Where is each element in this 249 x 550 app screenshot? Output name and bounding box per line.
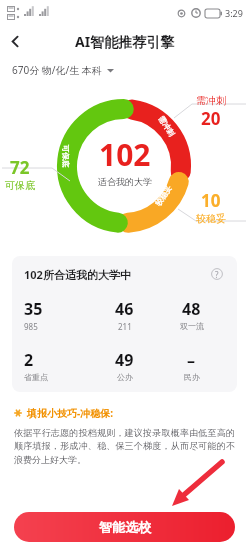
staticText: 72 — [10, 156, 30, 179]
staticText: 102 — [99, 134, 151, 175]
staticText: 2 — [24, 349, 34, 371]
staticText: 民办 — [184, 372, 200, 382]
staticText: 适合我的大学 — [98, 176, 152, 187]
staticText: 智能选校 — [99, 519, 151, 535]
staticText: 35 — [24, 298, 43, 320]
staticText: 公办 — [117, 372, 133, 382]
staticText: 3:29 — [225, 7, 243, 19]
staticText: 可保底 — [5, 179, 35, 192]
button[interactable]: Help — [209, 266, 225, 282]
staticText: 需冲刺 — [156, 114, 177, 139]
staticText: 49 — [115, 349, 134, 371]
staticText: 211 — [118, 321, 132, 332]
staticText: 48 — [182, 298, 201, 320]
staticText: 20 — [201, 107, 221, 130]
staticText: 较稳妥 — [196, 212, 226, 225]
staticText: 可保底 — [61, 145, 70, 168]
staticText: 较稳妥 — [153, 183, 174, 208]
staticText: 省重点 — [24, 372, 48, 382]
staticText: AI智能推荐引擎 — [75, 32, 175, 51]
staticText: ? — [215, 269, 219, 280]
button[interactable]: 智能选校 — [14, 512, 235, 542]
staticText: 双一流 — [180, 321, 204, 331]
staticText: 10 — [201, 189, 221, 212]
staticText: 填报小技巧-冲稳保: — [27, 406, 114, 420]
staticText: 670分 物/化/生 本科 — [12, 63, 102, 77]
button[interactable]: Back — [0, 26, 30, 56]
staticText: 依据平行志愿的投档规则，建议按录取概率由低至高的顺序填报，形成冲、稳、保三个梯度… — [14, 427, 235, 466]
button[interactable]: 670分 物/化/生 本科 — [12, 56, 249, 84]
staticText: – — [187, 349, 196, 371]
staticText: 102所合适我的大学中 — [24, 267, 131, 282]
staticText: 46 — [115, 298, 134, 320]
staticText: 985 — [24, 321, 38, 332]
staticText: 需冲刺 — [196, 94, 226, 107]
